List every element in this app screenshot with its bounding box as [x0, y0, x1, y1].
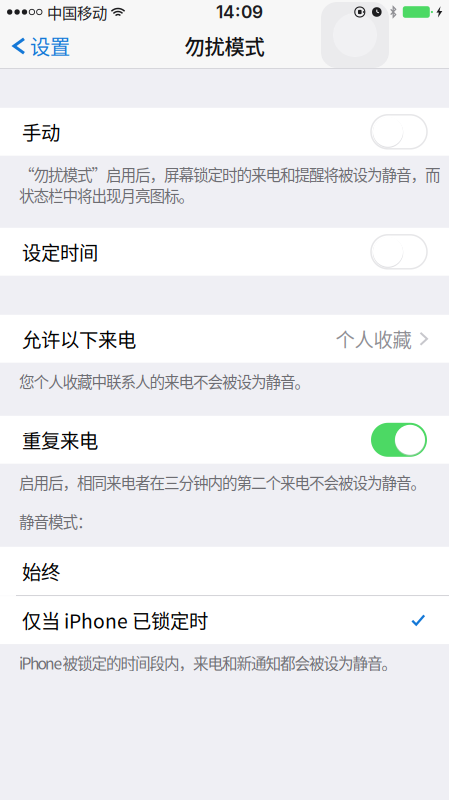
button[interactable]: 手动: [0, 108, 449, 156]
staticText: 状态栏中将出现月亮图标。: [19, 184, 194, 207]
button[interactable]: AssistiveTouch: [321, 0, 389, 68]
staticText: 勿扰模式: [184, 31, 264, 61]
staticText: 静音模式：: [19, 510, 93, 533]
staticText: 重复来电: [22, 426, 98, 454]
staticText: 14:09: [216, 1, 263, 22]
staticText: 仅当 iPhone 已锁定时: [22, 606, 208, 634]
staticText: 中国移动: [47, 1, 107, 23]
staticText: iPhone 被锁定的时间段内，来电和新通知都会被设为静音。: [19, 651, 397, 674]
staticText: 手动: [22, 118, 60, 146]
button[interactable]: 仅当 iPhone 已锁定时: [0, 596, 449, 644]
button[interactable]: 允许以下来电: [0, 315, 449, 363]
button[interactable]: 始终: [0, 547, 449, 595]
staticText: 始终: [22, 557, 60, 585]
staticText: 您个人收藏中联系人的来电不会被设为静音。: [19, 370, 310, 393]
staticText: 个人收藏: [335, 325, 411, 353]
staticText: “勿扰模式”启用后，屏幕锁定时的来电和提醒将被设为静音，而: [19, 163, 441, 186]
button[interactable]: 设置: [0, 24, 80, 68]
staticText: 启用后，相同来电者在三分钟内的第二个来电不会被设为静音。: [19, 471, 426, 494]
staticText: 设置: [30, 31, 70, 61]
button[interactable]: 设定时间: [0, 228, 449, 276]
staticText: 设定时间: [22, 238, 98, 266]
button[interactable]: 重复来电: [0, 416, 449, 464]
staticText: 允许以下来电: [22, 325, 136, 353]
